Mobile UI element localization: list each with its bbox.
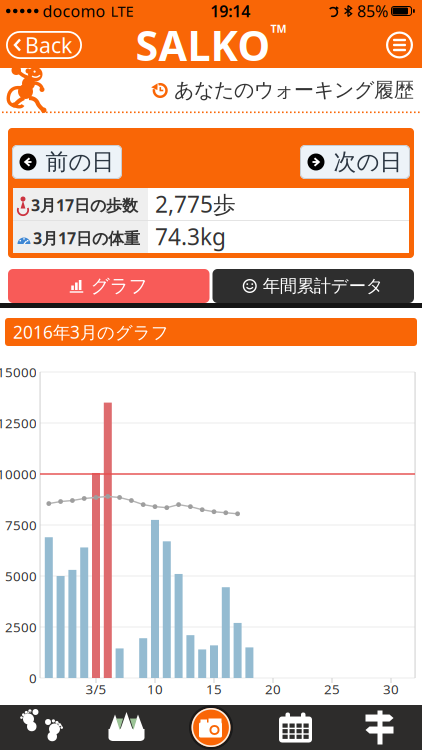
staticText: 2500 [5,618,37,636]
staticText: 10 [147,680,163,698]
staticText: 10000 [0,465,37,483]
button[interactable]: グラフ [8,269,209,303]
staticText: TM [270,22,286,36]
staticText: 前の日 [45,148,114,176]
button[interactable]: Calendar [279,712,312,742]
staticText: 19:14 [210,0,250,22]
staticText: 74.3kg [155,221,226,251]
button[interactable]: Back [6,31,82,59]
staticText: LTE [110,1,133,21]
staticText: 年間累計データ [263,275,384,297]
staticText: docomo [42,0,105,22]
staticText: 12500 [0,414,37,432]
staticText: グラフ [91,274,148,297]
staticText: 3月17日の歩数 [31,194,138,216]
button[interactable]: Achievements [107,712,145,743]
button[interactable]: 次の日 [300,145,410,179]
staticText: 5000 [5,567,37,585]
staticText: 25 [324,680,340,698]
button[interactable]: Guide [363,710,396,744]
button[interactable]: 前の日 [12,145,122,179]
staticText: 15 [206,680,222,698]
staticText: 85% [357,0,388,22]
button[interactable]: Menu [386,31,413,58]
staticText: あなたのウォーキング履歴 [174,78,414,102]
staticText: 2,775歩 [155,189,236,219]
staticText: 0 [29,669,37,687]
button[interactable]: Steps [20,706,64,748]
staticText: Back [25,31,72,59]
staticText: 2016年3月のグラフ [13,320,169,343]
staticText: 20 [265,680,281,698]
staticText: SALKO [135,18,270,72]
staticText: 7500 [5,516,37,534]
staticText: 30 [383,680,399,698]
staticText: 次の日 [333,148,402,176]
staticText: 15000 [0,363,37,381]
button[interactable]: 年間累計データ [212,269,414,303]
staticText: 3/5 [85,680,106,698]
staticText: 3月17日の体重 [33,227,140,249]
button[interactable]: Camera [188,705,234,750]
